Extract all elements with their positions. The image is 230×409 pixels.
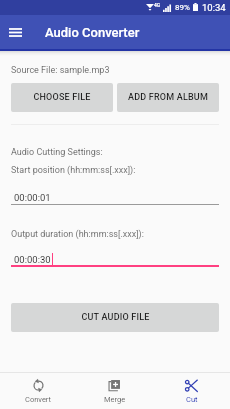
button[interactable]: 00:00:30 (11, 254, 219, 267)
button[interactable]: CHOOSE FILE (11, 83, 113, 112)
button[interactable]: CUT AUDIO FILE (11, 303, 219, 332)
staticText: Start position (hh:mm:ss[.xxx]): (11, 165, 136, 176)
staticText: CUT AUDIO FILE (81, 312, 150, 323)
staticText: 89% (175, 3, 190, 12)
staticText: 00:00:30 (14, 254, 51, 265)
staticText: Output duration (hh:mm:ss[.xxx]): (11, 229, 144, 240)
staticText: Merge (104, 395, 126, 404)
staticText: 10:34 (202, 2, 226, 13)
staticText: Cut (186, 395, 198, 404)
button[interactable]: 00:00:01 (11, 192, 219, 205)
staticText: Convert (25, 395, 52, 404)
staticText: ADD FROM ALBUM (128, 92, 208, 103)
button[interactable]: Cut (153, 373, 230, 409)
button[interactable]: Merge (76, 373, 153, 409)
staticText: Source File: sample.mp3 (11, 65, 110, 76)
button[interactable]: Convert (0, 373, 76, 409)
staticText: Audio Converter (45, 25, 140, 40)
staticText: 4G (154, 2, 161, 8)
button[interactable]: Open navigation drawer (3, 20, 27, 44)
button[interactable]: ADD FROM ALBUM (117, 83, 219, 112)
staticText: CHOOSE FILE (33, 92, 91, 103)
staticText: Audio Cutting Settings: (11, 147, 103, 158)
staticText: 00:00:01 (14, 192, 51, 203)
